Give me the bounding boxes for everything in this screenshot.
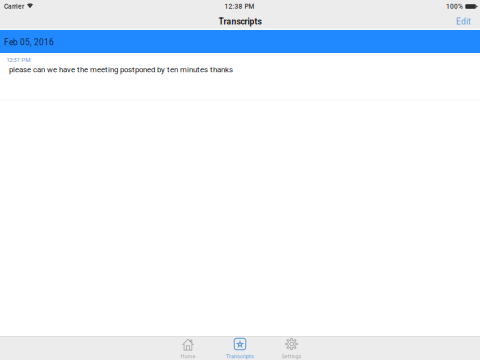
staticText: Transcripts	[226, 353, 254, 360]
staticText: Edit	[456, 16, 471, 26]
staticText: Transcripts	[218, 16, 261, 26]
staticText: Home	[180, 353, 195, 360]
staticText: Carrier	[4, 3, 24, 10]
button[interactable]: Home	[166, 337, 210, 360]
button[interactable]: Edit	[451, 13, 476, 29]
staticText: Feb 05, 2016	[4, 37, 54, 47]
button[interactable]: Transcripts	[218, 337, 262, 360]
button[interactable]: 12:37 PM	[0, 53, 480, 99]
staticText: 12:38 PM	[225, 3, 255, 10]
staticText: 12:37 PM	[6, 56, 30, 63]
staticText: please can we have the meeting postponed…	[9, 65, 233, 74]
staticText: 100%	[446, 3, 463, 10]
button[interactable]: Settings	[269, 337, 313, 360]
staticText: Settings	[281, 353, 301, 360]
